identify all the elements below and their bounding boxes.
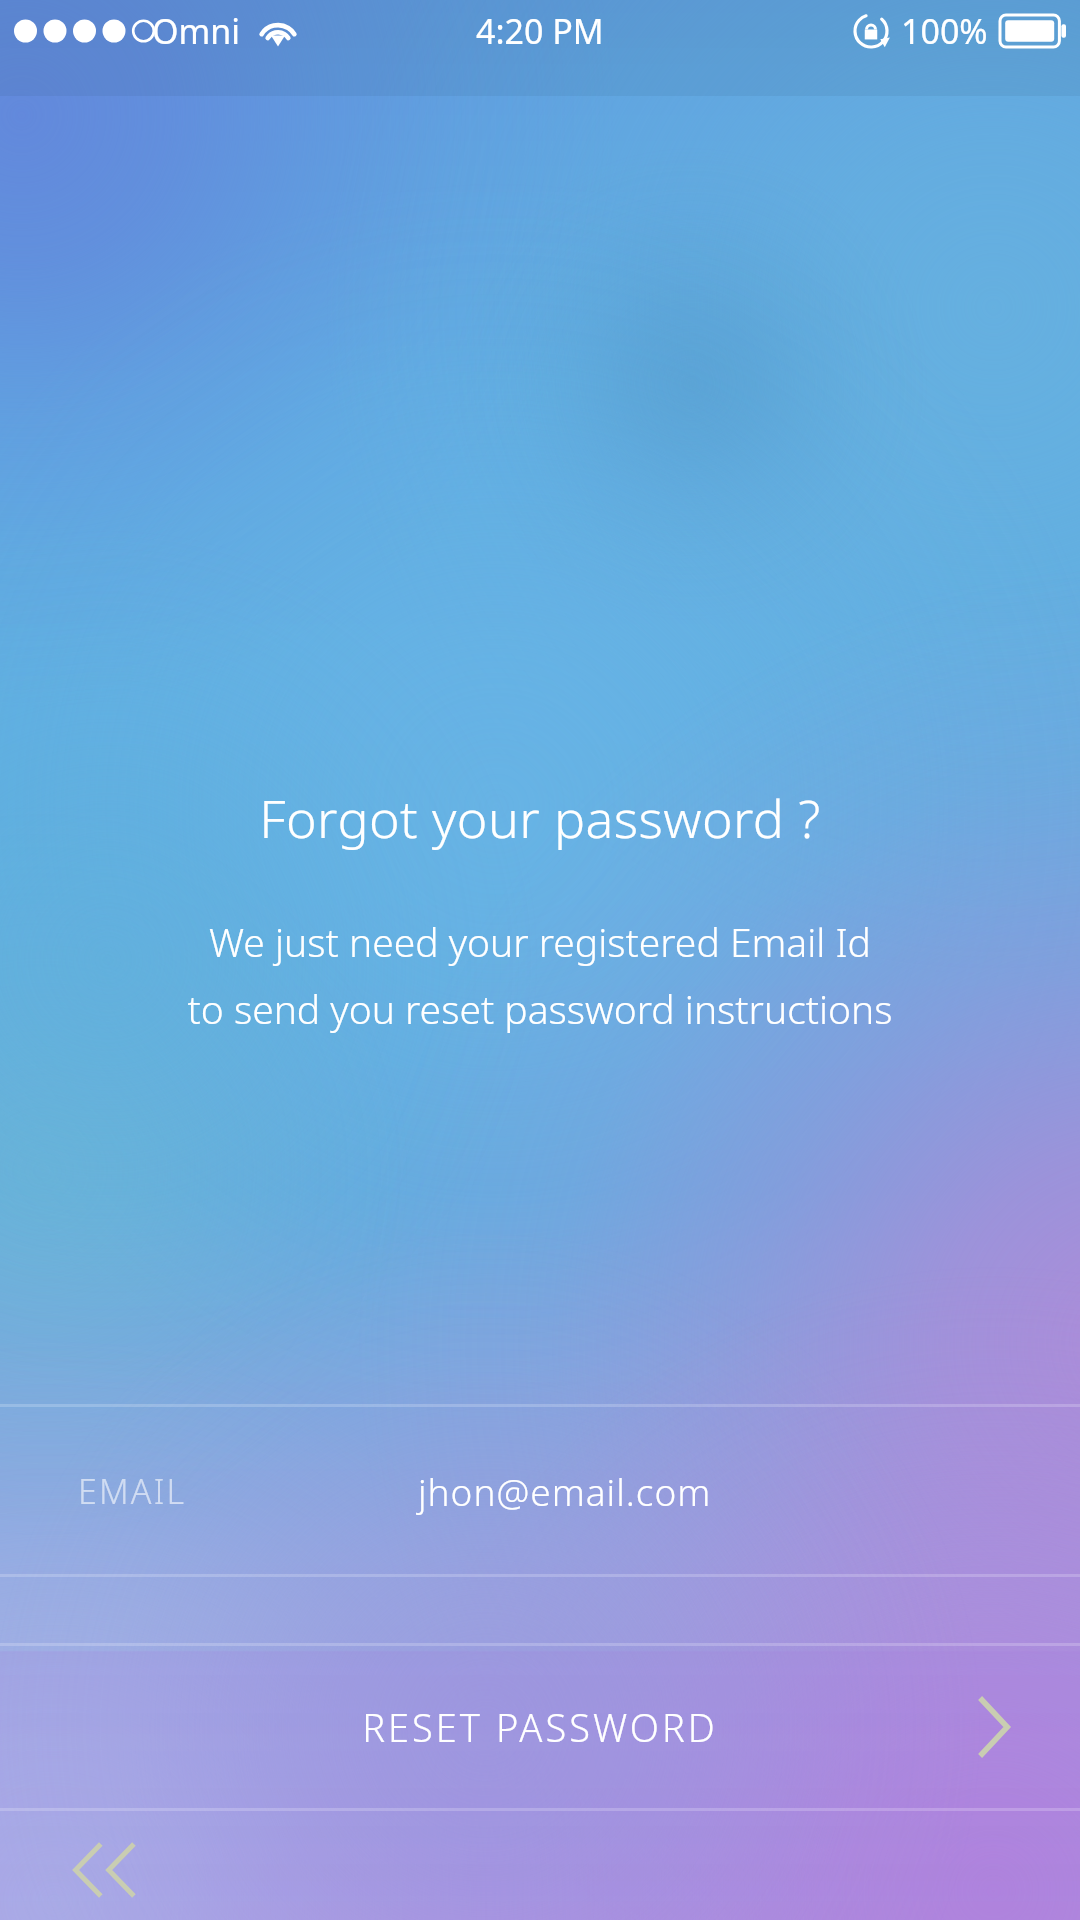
staticText: We just need your registered Email Id [209, 915, 871, 968]
staticText: to send you reset password instructions [187, 982, 893, 1035]
staticText: 4:20 PM [476, 8, 604, 54]
staticText: Forgot your password ? [259, 782, 821, 853]
button[interactable]: Back [48, 1820, 168, 1920]
staticText: Omni [152, 8, 241, 54]
button[interactable]: EMAIL [0, 1407, 1080, 1574]
staticText: EMAIL [78, 1468, 187, 1514]
staticText: jhon@email.com [418, 1466, 712, 1516]
staticText: 100% [901, 8, 988, 54]
staticText: RESET PASSWORD [362, 1701, 718, 1753]
button[interactable]: RESET PASSWORD [0, 1646, 1080, 1808]
